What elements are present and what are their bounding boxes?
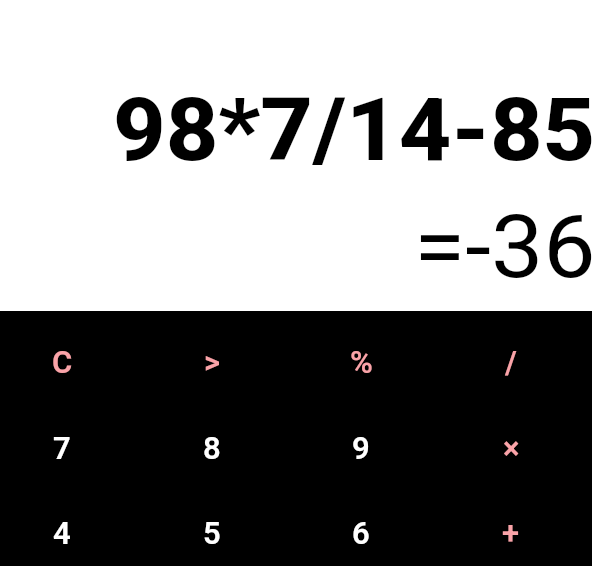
staticText: 98*7/14-85	[113, 78, 592, 181]
button[interactable]: Four	[0, 490, 137, 566]
staticText: 8	[203, 430, 221, 466]
button[interactable]: Nine	[286, 405, 436, 491]
staticText: 4	[53, 515, 71, 551]
button[interactable]: Divide	[436, 319, 586, 405]
staticText: 6	[352, 515, 370, 551]
staticText: ×	[503, 430, 520, 466]
button[interactable]: Seven	[0, 405, 137, 491]
button[interactable]: Clear	[0, 319, 137, 405]
staticText: /	[505, 344, 517, 380]
button[interactable]: Eight	[137, 405, 287, 491]
staticText: >	[204, 344, 221, 380]
staticText: %	[350, 344, 373, 380]
staticText: 5	[203, 515, 221, 551]
staticText: 7	[53, 430, 71, 466]
staticText: 9	[352, 430, 370, 466]
staticText: +	[502, 515, 520, 551]
button[interactable]: Backspace	[137, 319, 287, 405]
button[interactable]: Multiply	[436, 405, 586, 491]
button[interactable]: Percent	[286, 319, 436, 405]
staticText: =-36	[414, 196, 592, 298]
button[interactable]: Plus	[436, 490, 586, 566]
button[interactable]: Five	[137, 490, 287, 566]
staticText: C	[52, 344, 73, 380]
button[interactable]: Six	[286, 490, 436, 566]
